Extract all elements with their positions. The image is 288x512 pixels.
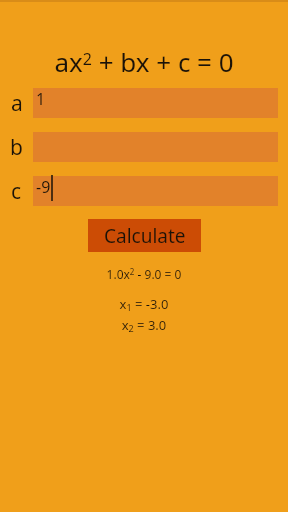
staticText: ax2 + bx + c = 0 (0, 44, 288, 79)
staticText: a (11, 89, 23, 118)
staticText: 1.0x2 - 9.0 = 0 (0, 266, 288, 282)
staticText: 1 (36, 88, 46, 110)
button[interactable]: a (0, 88, 288, 118)
button[interactable]: Calculate (88, 219, 201, 252)
staticText: b (10, 133, 23, 162)
button[interactable]: b (0, 132, 288, 162)
button[interactable]: c (0, 176, 288, 206)
staticText: c (11, 177, 22, 206)
staticText: x1 = -3.0 (0, 295, 288, 314)
staticText: -9 (36, 176, 51, 198)
staticText: x2 = 3.0 (0, 316, 288, 335)
staticText: Calculate (104, 223, 186, 249)
